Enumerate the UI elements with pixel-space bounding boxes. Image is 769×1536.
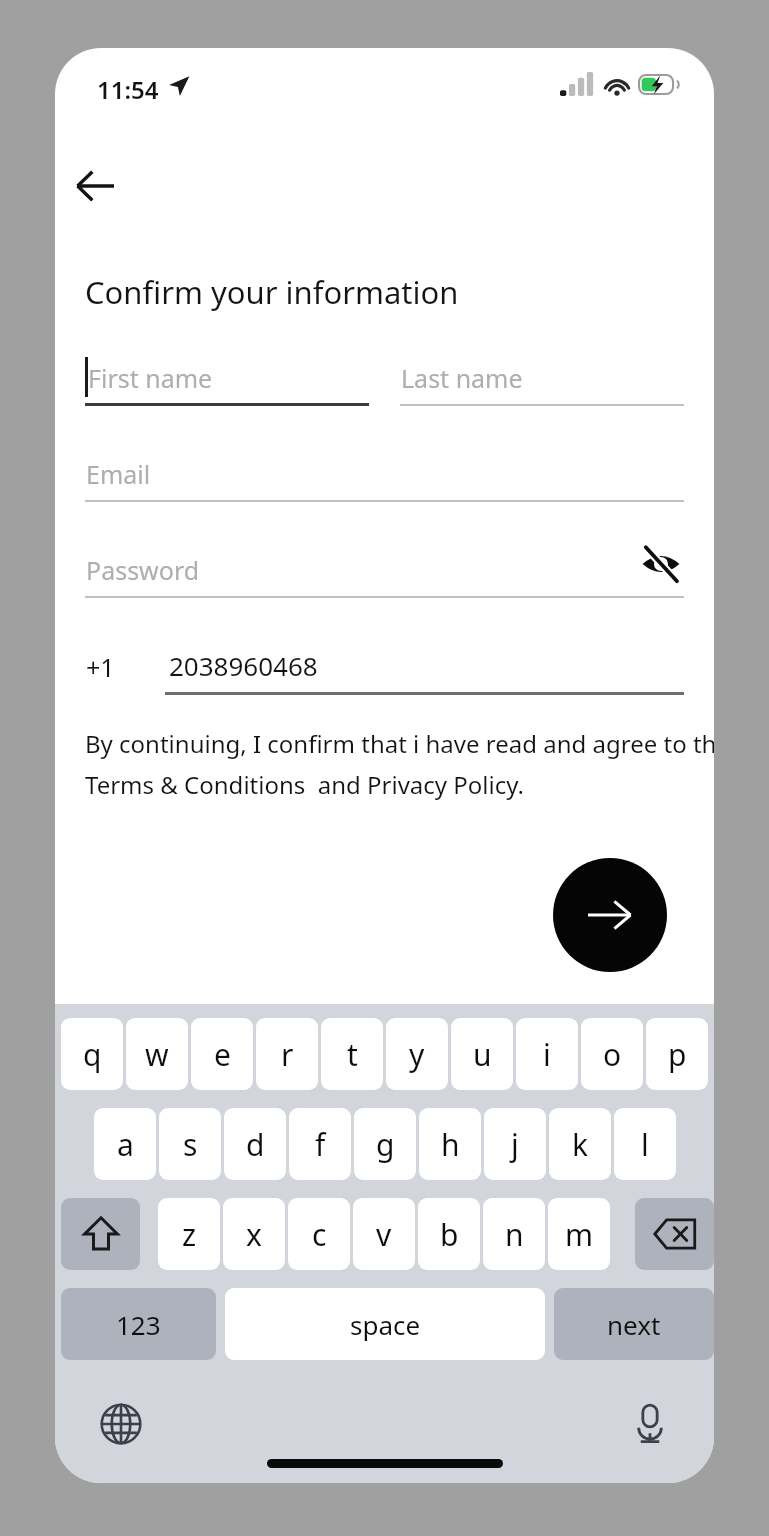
button[interactable]: +1 bbox=[85, 636, 684, 708]
button[interactable]: 123 bbox=[61, 1288, 216, 1360]
staticText: 123 bbox=[116, 1307, 161, 1342]
button[interactable]: v bbox=[353, 1198, 415, 1270]
button[interactable]: i bbox=[516, 1018, 578, 1090]
button[interactable]: j bbox=[484, 1108, 546, 1180]
staticText: h bbox=[441, 1124, 460, 1165]
button[interactable]: First name bbox=[85, 348, 369, 420]
staticText: r bbox=[281, 1034, 294, 1075]
button[interactable]: y bbox=[386, 1018, 448, 1090]
button[interactable]: Backspace bbox=[635, 1198, 714, 1270]
staticText: Terms & Conditions and Privacy Policy. bbox=[85, 768, 524, 801]
button[interactable]: e bbox=[191, 1018, 253, 1090]
button[interactable]: c bbox=[288, 1198, 350, 1270]
button[interactable]: l bbox=[614, 1108, 676, 1180]
staticText: 11:54 bbox=[97, 73, 159, 106]
staticText: By continuing, I confirm that i have rea… bbox=[85, 727, 714, 760]
button[interactable]: Voice input bbox=[618, 1392, 682, 1456]
staticText: s bbox=[183, 1124, 198, 1165]
staticText: Email bbox=[86, 457, 151, 491]
staticText: p bbox=[668, 1034, 687, 1075]
button[interactable]: Password bbox=[85, 540, 684, 612]
button[interactable]: f bbox=[289, 1108, 351, 1180]
staticText: 2038960468 bbox=[169, 648, 318, 683]
button[interactable]: s bbox=[159, 1108, 221, 1180]
button[interactable]: p bbox=[646, 1018, 708, 1090]
staticText: e bbox=[214, 1034, 231, 1075]
button[interactable]: u bbox=[451, 1018, 513, 1090]
staticText: g bbox=[376, 1124, 395, 1165]
staticText: i bbox=[543, 1034, 551, 1075]
button[interactable]: Last name bbox=[400, 348, 684, 420]
staticText: next bbox=[607, 1307, 661, 1342]
button[interactable]: h bbox=[419, 1108, 481, 1180]
button[interactable]: z bbox=[158, 1198, 220, 1270]
staticText: l bbox=[641, 1124, 649, 1165]
staticText: space bbox=[350, 1307, 421, 1342]
staticText: v bbox=[376, 1214, 392, 1255]
button[interactable]: space bbox=[225, 1288, 545, 1360]
staticText: u bbox=[473, 1034, 492, 1075]
button[interactable]: Back bbox=[57, 148, 133, 224]
staticText: f bbox=[315, 1124, 326, 1165]
staticText: k bbox=[572, 1124, 589, 1165]
staticText: b bbox=[440, 1214, 459, 1255]
staticText: z bbox=[182, 1214, 197, 1255]
staticText: w bbox=[145, 1034, 169, 1075]
staticText: x bbox=[246, 1214, 262, 1255]
staticText: Confirm your information bbox=[85, 271, 459, 313]
staticText: a bbox=[117, 1124, 134, 1165]
button[interactable]: g bbox=[354, 1108, 416, 1180]
button[interactable]: Continue bbox=[553, 858, 667, 972]
staticText: d bbox=[246, 1124, 265, 1165]
staticText: m bbox=[565, 1214, 594, 1255]
button[interactable]: b bbox=[418, 1198, 480, 1270]
staticText: q bbox=[83, 1034, 102, 1075]
button[interactable]: k bbox=[549, 1108, 611, 1180]
staticText: j bbox=[511, 1124, 519, 1165]
button[interactable]: t bbox=[321, 1018, 383, 1090]
button[interactable]: Change keyboard bbox=[89, 1392, 153, 1456]
staticText: First name bbox=[88, 361, 213, 395]
button[interactable]: Shift bbox=[61, 1198, 140, 1270]
button[interactable]: w bbox=[126, 1018, 188, 1090]
staticText: c bbox=[312, 1214, 327, 1255]
button[interactable]: n bbox=[483, 1198, 545, 1270]
button[interactable]: d bbox=[224, 1108, 286, 1180]
button[interactable]: a bbox=[94, 1108, 156, 1180]
button[interactable]: next bbox=[554, 1288, 714, 1360]
button[interactable]: o bbox=[581, 1018, 643, 1090]
button[interactable]: x bbox=[223, 1198, 285, 1270]
staticText: t bbox=[347, 1034, 358, 1075]
button[interactable]: Email bbox=[85, 444, 684, 516]
button[interactable]: q bbox=[61, 1018, 123, 1090]
staticText: Password bbox=[86, 553, 200, 587]
button[interactable]: r bbox=[256, 1018, 318, 1090]
staticText: n bbox=[505, 1214, 524, 1255]
staticText: +1 bbox=[86, 650, 115, 684]
button[interactable]: Show password bbox=[630, 533, 692, 595]
staticText: o bbox=[603, 1034, 622, 1075]
button[interactable]: m bbox=[548, 1198, 610, 1270]
staticText: y bbox=[409, 1034, 425, 1075]
staticText: Last name bbox=[401, 361, 523, 395]
